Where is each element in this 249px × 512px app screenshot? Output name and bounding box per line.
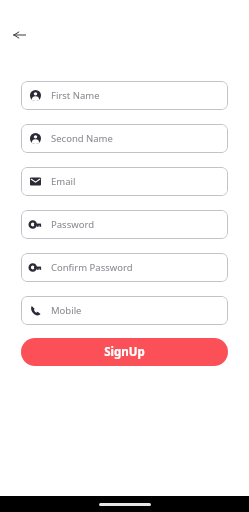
button[interactable]: SignUp xyxy=(21,338,228,366)
button[interactable]: Email xyxy=(21,167,228,196)
staticText: First Name xyxy=(51,89,100,102)
button[interactable]: Confirm Password xyxy=(21,253,228,282)
staticText: Mobile xyxy=(51,304,82,317)
button[interactable]: Mobile xyxy=(21,296,228,325)
staticText: Email xyxy=(51,175,76,188)
button[interactable]: Password xyxy=(21,210,228,239)
button[interactable]: Back xyxy=(7,23,31,47)
button[interactable]: First Name xyxy=(21,81,228,110)
staticText: Password xyxy=(51,218,94,231)
button[interactable]: Second Name xyxy=(21,124,228,153)
staticText: Second Name xyxy=(51,132,113,145)
staticText: SignUp xyxy=(104,344,145,360)
staticText: Confirm Password xyxy=(51,261,133,274)
